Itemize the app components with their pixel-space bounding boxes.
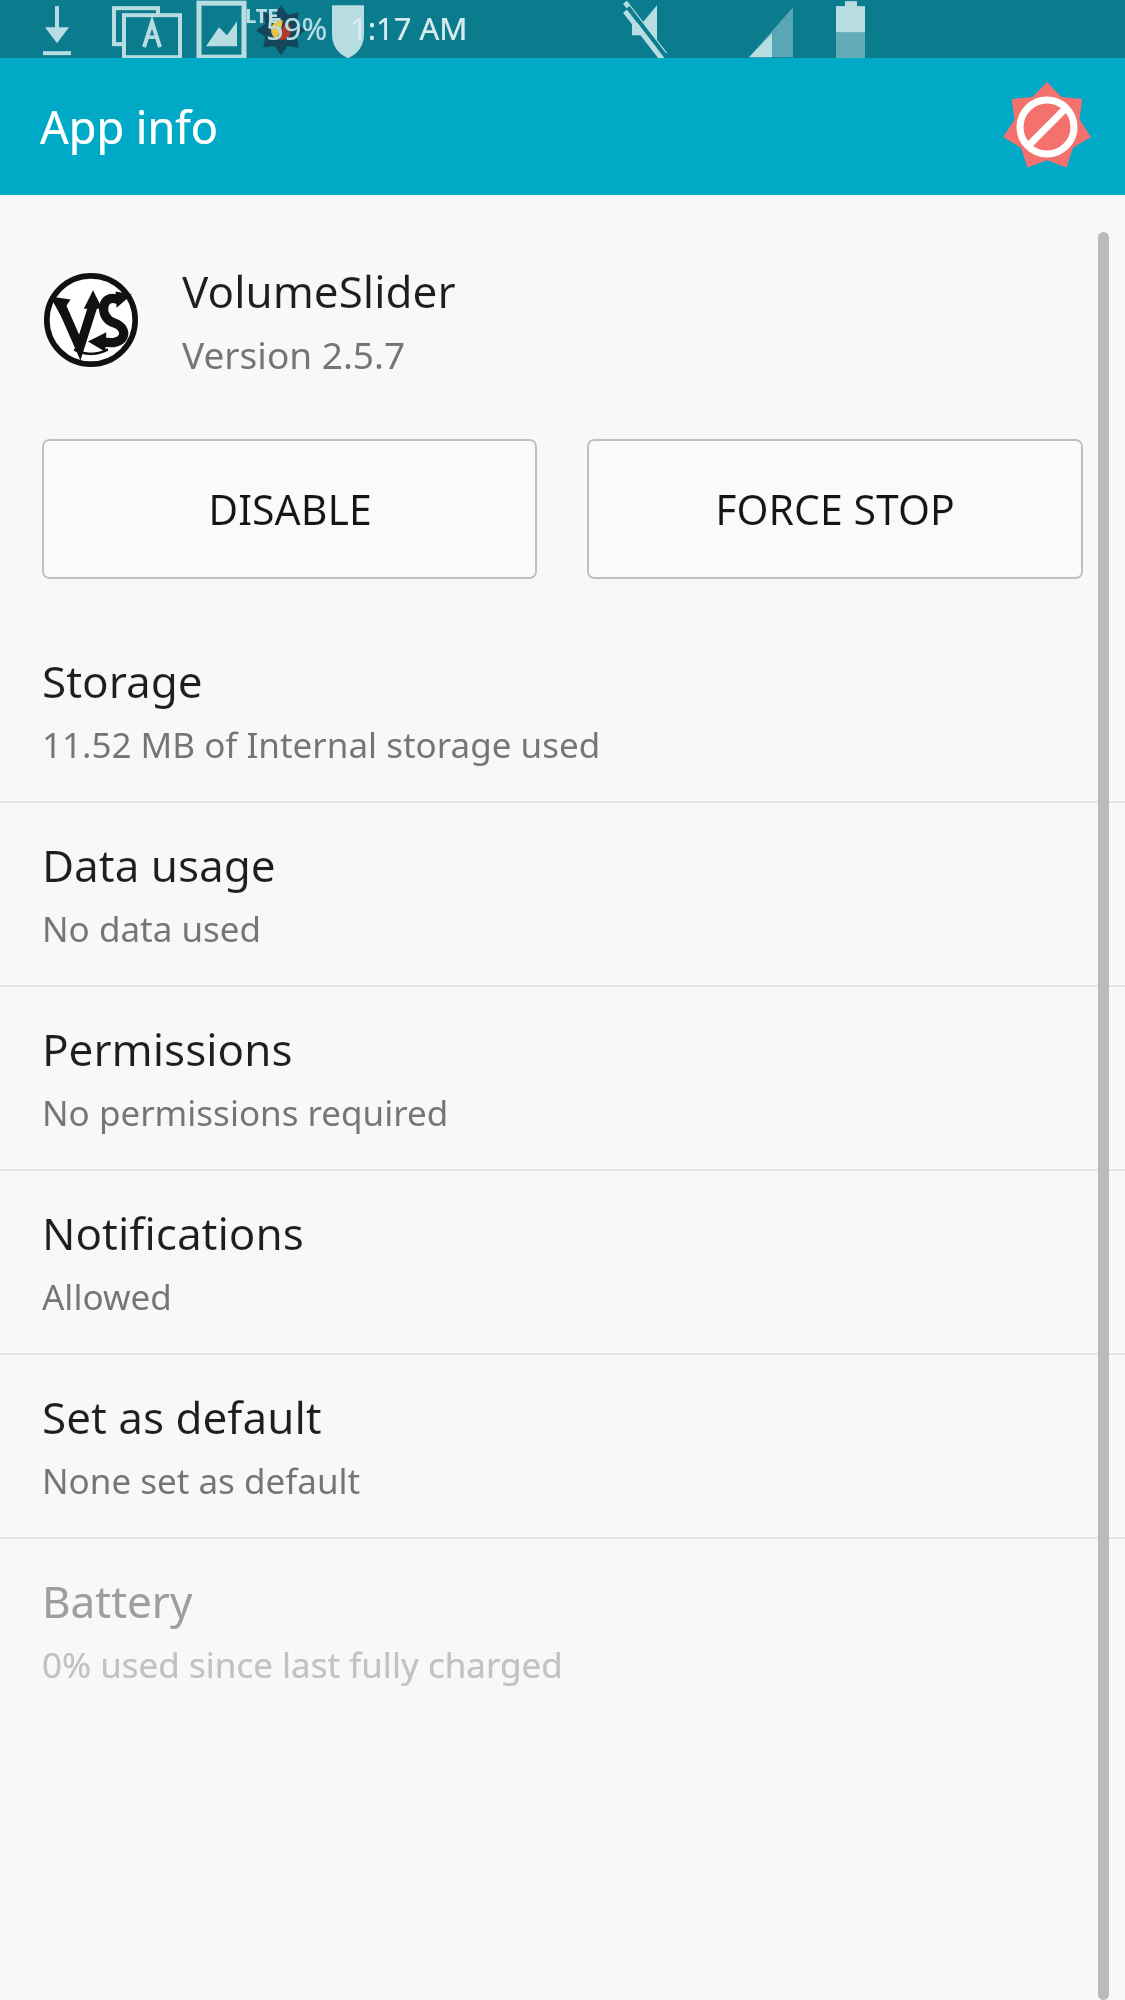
staticText: Allowed	[42, 1273, 172, 1321]
staticText: VolumeSlider	[182, 261, 456, 321]
button[interactable]: FORCE STOP	[587, 439, 1083, 579]
staticText: DISABLE	[208, 481, 372, 537]
button[interactable]: Battery	[0, 1539, 1125, 1721]
staticText: No data used	[42, 905, 262, 953]
button[interactable]: Data usage	[0, 803, 1125, 985]
staticText: Data usage	[42, 835, 276, 895]
button[interactable]: Storage	[0, 619, 1125, 801]
staticText: Storage	[42, 651, 203, 711]
staticText: Permissions	[42, 1019, 293, 1079]
staticText: FORCE STOP	[715, 481, 955, 537]
staticText: Notifications	[42, 1203, 304, 1263]
button[interactable]: Permissions	[0, 987, 1125, 1169]
staticText: LTE	[245, 2, 279, 29]
staticText: None set as default	[42, 1457, 361, 1505]
staticText: Battery	[42, 1571, 193, 1631]
staticText: 11.52 MB of Internal storage used	[42, 721, 601, 769]
staticText: 59%	[266, 7, 328, 49]
staticText: Version 2.5.7	[182, 329, 406, 379]
button[interactable]: Set as default	[0, 1355, 1125, 1537]
button[interactable]: Notifications	[0, 1171, 1125, 1353]
staticText: 0% used since last fully charged	[42, 1641, 563, 1689]
staticText: Set as default	[42, 1387, 322, 1447]
staticText: 1:17 AM	[350, 7, 468, 49]
staticText: No permissions required	[42, 1089, 449, 1137]
button[interactable]: DISABLE	[42, 439, 537, 579]
staticText: App info	[40, 96, 218, 157]
button[interactable]: App permissions blocked	[991, 71, 1103, 183]
